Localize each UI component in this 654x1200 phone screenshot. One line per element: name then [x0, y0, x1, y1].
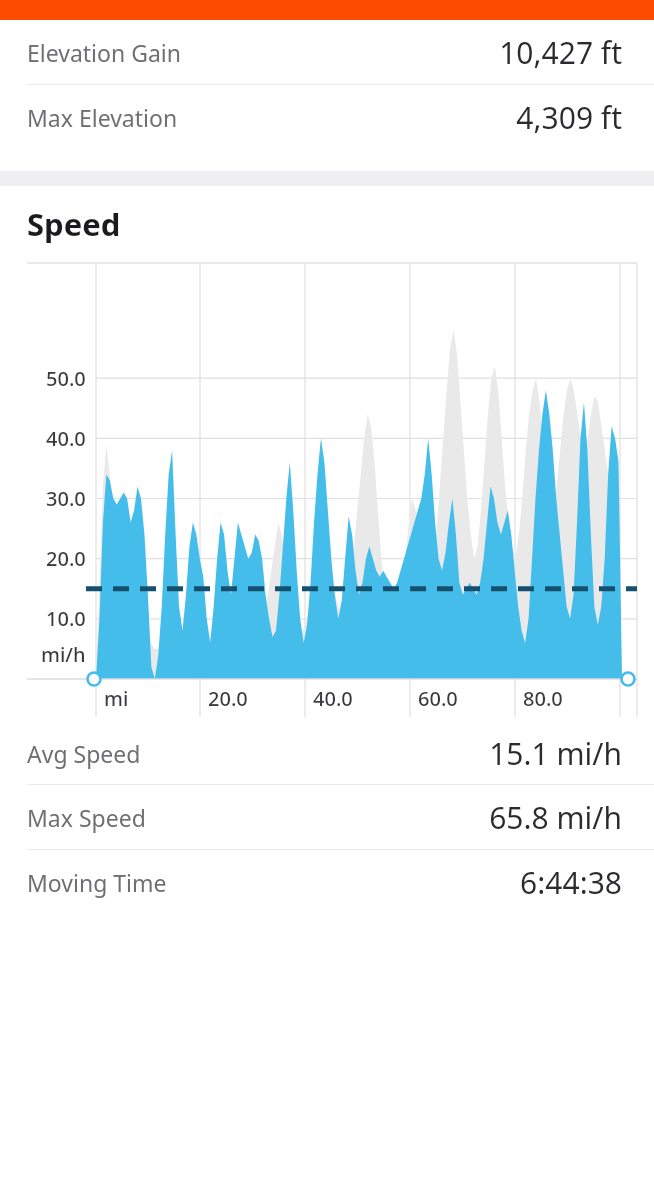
button[interactable]: Max Elevation [0, 85, 654, 150]
button[interactable]: Moving Time [0, 850, 654, 914]
button[interactable]: Avg Speed [0, 722, 654, 784]
staticText: Moving Time [27, 867, 167, 898]
staticText: Speed [27, 203, 121, 245]
staticText: 6:44:38 [520, 862, 622, 903]
staticText: Max Speed [27, 802, 146, 833]
button[interactable]: Max Speed [0, 785, 654, 849]
staticText: Elevation Gain [27, 37, 181, 68]
button[interactable]: Elevation Gain [0, 20, 654, 84]
staticText: 65.8 mi/h [489, 797, 622, 838]
staticText: Avg Speed [27, 738, 141, 769]
staticText: 15.1 mi/h [489, 733, 622, 774]
staticText: 4,309 ft [516, 97, 622, 138]
staticText: Max Elevation [27, 102, 178, 133]
staticText: 10,427 ft [499, 32, 622, 73]
